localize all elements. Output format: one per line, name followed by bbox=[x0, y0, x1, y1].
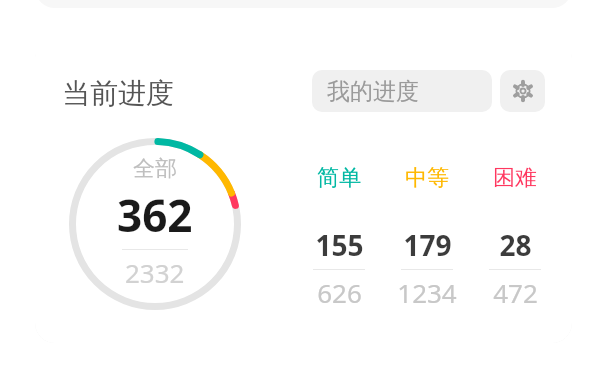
button[interactable]: 我的进度 bbox=[312, 70, 492, 112]
staticText: 2332 bbox=[125, 255, 185, 290]
staticText: 362 bbox=[117, 185, 193, 245]
button[interactable]: 困难 bbox=[479, 164, 551, 310]
staticText: 179 bbox=[403, 226, 452, 264]
staticText: 我的进度 bbox=[327, 77, 419, 106]
button[interactable]: 当前进度 bbox=[62, 76, 174, 111]
staticText: 中等 bbox=[405, 164, 449, 192]
staticText: 28 bbox=[499, 226, 532, 264]
button[interactable]: 简单 bbox=[303, 164, 375, 310]
staticText: 当前进度 bbox=[62, 76, 174, 111]
staticText: 全部 bbox=[133, 155, 177, 183]
staticText: 472 bbox=[493, 275, 538, 310]
button[interactable]: 中等 bbox=[391, 164, 463, 310]
staticText: 简单 bbox=[317, 164, 361, 192]
button[interactable]: 全部 bbox=[65, 134, 245, 314]
staticText: 626 bbox=[317, 275, 362, 310]
staticText: 困难 bbox=[493, 164, 537, 192]
button[interactable]: Settings bbox=[500, 70, 545, 112]
staticText: 1234 bbox=[397, 275, 457, 310]
staticText: 155 bbox=[315, 226, 364, 264]
